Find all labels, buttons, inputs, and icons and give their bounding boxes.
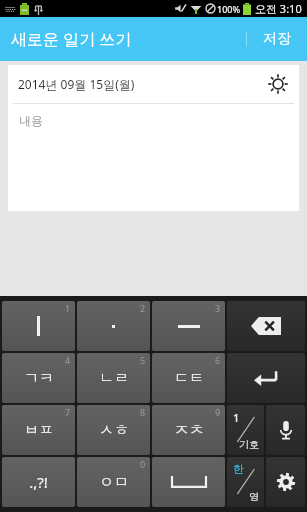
staticText: ㅇㅁ [99,473,129,492]
button[interactable]: 새로운 일기 쓰기 [0,17,246,61]
button[interactable]: ㄴㄹ [77,353,150,403]
button[interactable]: Backspace [227,301,305,351]
staticText: 100% [217,3,241,15]
button[interactable]: 날씨 선택 [265,71,291,97]
staticText: 내용 [19,113,43,128]
staticText: 새로운 일기 쓰기 [11,28,132,50]
button[interactable]: 기호 입력 [227,405,264,455]
button[interactable]: 설정 [266,457,305,507]
staticText: 9 [215,406,221,418]
staticText: ㄱㅋ [24,369,54,388]
staticText: 8 [140,406,146,418]
button[interactable]: 음성 입력 [266,405,305,455]
button[interactable]: ㅇㅁ [77,457,150,507]
button[interactable]: 1 [2,301,75,351]
button[interactable]: ㄱㅋ [2,353,75,403]
staticText: ㄷㅌ [174,369,204,388]
staticText: ㄴㄹ [99,369,129,388]
staticText: 4 [65,354,71,366]
button[interactable]: ㅂㅍ [2,405,75,455]
staticText: 0 [140,458,146,470]
button[interactable] [152,457,225,507]
staticText: 1 [233,410,240,425]
staticText: 저장 [263,30,291,48]
staticText: 5 [140,354,146,366]
staticText: .,?! [29,472,48,492]
staticText: 한 [233,462,244,476]
button[interactable]: 한영 전환 [227,457,264,507]
button[interactable]: Enter [227,353,305,403]
staticText: 2014년 09월 15일(월) [18,76,265,92]
button[interactable]: 3 [152,301,225,351]
staticText: 기호 [239,438,259,451]
staticText: ㅈㅊ [174,421,204,440]
staticText: 1 [65,302,71,314]
button[interactable]: 내용 [13,103,294,205]
staticText: ㅂㅍ [24,421,54,440]
staticText: 7 [65,406,71,418]
button[interactable]: .,?! [2,457,75,507]
staticText: ㅅㅎ [99,421,129,440]
staticText: 오전 3:10 [255,1,302,16]
button[interactable]: ㄷㅌ [152,353,225,403]
staticText: 6 [215,354,221,366]
button[interactable]: ㅈㅊ [152,405,225,455]
button[interactable]: 2 [77,301,150,351]
staticText: 2 [140,302,146,314]
button[interactable]: 저장 [247,17,307,61]
staticText: 영 [249,490,259,503]
button[interactable]: ㅅㅎ [77,405,150,455]
staticText: 3 [215,302,221,314]
